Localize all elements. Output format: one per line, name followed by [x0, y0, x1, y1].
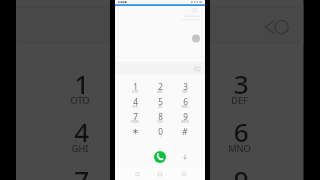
button[interactable]: 6	[173, 94, 197, 108]
staticText: 8	[153, 161, 169, 180]
staticText: DEF	[182, 90, 188, 94]
button[interactable]: 2	[121, 59, 198, 104]
staticText: 0	[158, 126, 163, 136]
staticText: +	[159, 135, 161, 139]
staticText: JKL	[158, 105, 163, 109]
button[interactable]: Hide keypad	[181, 153, 189, 161]
staticText: MNO	[181, 105, 189, 109]
button[interactable]: #	[173, 124, 197, 138]
staticText: GHI	[70, 142, 89, 155]
staticText: ABC	[150, 94, 169, 107]
staticText: 8	[158, 111, 163, 121]
staticText: TUV	[157, 120, 163, 124]
button[interactable]: 3	[201, 59, 278, 104]
button[interactable]: 2	[148, 79, 172, 93]
button[interactable]: 9	[201, 155, 278, 180]
button[interactable]: Back	[131, 168, 145, 180]
staticText: MNO	[227, 142, 252, 155]
button[interactable]: Call	[154, 151, 166, 163]
staticText: ∗	[132, 126, 139, 136]
button[interactable]: Home	[153, 168, 167, 180]
button[interactable]: 9	[173, 109, 197, 123]
button[interactable]: 5	[121, 107, 198, 152]
staticText: 6	[183, 96, 188, 106]
staticText: 3	[233, 65, 249, 97]
button[interactable]: 7	[42, 155, 118, 180]
staticText: 4	[133, 96, 138, 106]
staticText: 4	[74, 113, 90, 145]
button[interactable]: 1	[123, 79, 147, 93]
button[interactable]: 8	[148, 109, 172, 123]
button[interactable]: 6	[201, 107, 278, 152]
button[interactable]: 0	[148, 124, 172, 138]
button[interactable]: Recents	[177, 168, 191, 180]
staticText: 3	[183, 81, 188, 91]
staticText: DEF	[230, 94, 249, 107]
button[interactable]: 8	[121, 155, 198, 180]
button[interactable]: 1	[42, 59, 118, 104]
staticText: 2	[158, 81, 163, 91]
button[interactable]: 4	[42, 107, 118, 152]
staticText: OTO	[132, 90, 138, 94]
button[interactable]: ∗	[123, 124, 147, 138]
staticText: PQRS	[131, 120, 139, 124]
button[interactable]: 4	[123, 94, 147, 108]
staticText: 7	[74, 161, 90, 180]
staticText: ABC	[157, 90, 163, 94]
staticText: 2	[153, 65, 169, 97]
staticText: 5	[153, 113, 169, 145]
staticText: GHI	[132, 105, 138, 109]
button[interactable]: 7	[123, 109, 147, 123]
staticText: JKL	[153, 142, 169, 155]
staticText: 1	[133, 81, 138, 91]
staticText: 1	[74, 65, 90, 97]
staticText: WXYZ	[181, 120, 189, 124]
button[interactable]: 5	[148, 94, 172, 108]
staticText: 6	[233, 113, 249, 145]
staticText: 5	[158, 96, 163, 106]
staticText: 7	[133, 111, 138, 121]
staticText: #	[182, 126, 188, 136]
button[interactable]: 3	[173, 79, 197, 93]
staticText: 9	[183, 111, 188, 121]
staticText: 9	[233, 161, 249, 180]
staticText: OTO	[70, 94, 89, 107]
